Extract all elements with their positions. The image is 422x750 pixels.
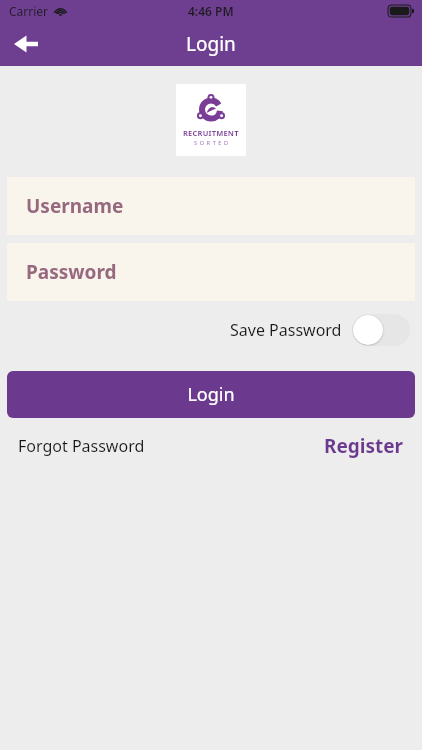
button[interactable]: Register xyxy=(324,433,404,459)
staticText: Save Password xyxy=(230,319,342,341)
button[interactable]: Username xyxy=(7,177,415,235)
staticText: RECRUITMENT xyxy=(183,128,239,138)
other: Save Password toggle xyxy=(352,314,410,346)
button[interactable]: Forgot Password xyxy=(18,435,145,457)
staticText: Login xyxy=(187,382,235,407)
staticText: Forgot Password xyxy=(18,435,145,457)
button[interactable]: Login xyxy=(7,371,415,418)
staticText: Register xyxy=(324,433,404,459)
staticText: Username xyxy=(26,193,124,219)
button[interactable]: Save Password xyxy=(230,314,410,346)
staticText: S O R T E D xyxy=(194,139,229,146)
staticText: Carrier xyxy=(9,3,49,19)
staticText: 4:46 PM xyxy=(188,3,234,19)
staticText: Password xyxy=(26,259,117,285)
staticText: Login xyxy=(186,31,236,57)
button[interactable]: Password xyxy=(7,243,415,301)
button[interactable]: Back xyxy=(6,24,46,64)
